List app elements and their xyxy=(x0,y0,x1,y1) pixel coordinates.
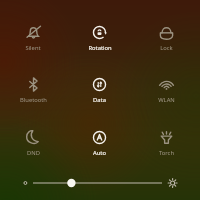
button[interactable]: WLAN xyxy=(133,76,200,104)
staticText: Bluetooth xyxy=(20,96,47,104)
button[interactable]: Torch xyxy=(133,129,200,157)
button[interactable]: Rotation xyxy=(66,24,133,52)
button[interactable]: Bluetooth xyxy=(0,76,66,104)
button[interactable]: DND xyxy=(0,129,66,157)
button[interactable]: Silent xyxy=(0,24,66,52)
staticText: Auto xyxy=(93,149,106,157)
staticText: DND xyxy=(27,149,40,157)
button[interactable]: Auto xyxy=(66,129,133,157)
staticText: WLAN xyxy=(158,96,175,104)
staticText: Lock xyxy=(160,44,173,52)
button[interactable]: Brightness xyxy=(0,172,200,194)
button[interactable]: Data xyxy=(66,76,133,104)
staticText: Torch xyxy=(159,149,174,157)
staticText: Data xyxy=(93,96,106,104)
button[interactable]: Lock xyxy=(133,24,200,52)
staticText: Rotation xyxy=(88,44,112,52)
staticText: Silent xyxy=(25,44,41,52)
